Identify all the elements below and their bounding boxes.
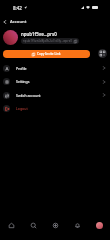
button[interactable]: Copy Invite Link	[3, 50, 90, 58]
staticText: Copy Invite Link	[37, 52, 61, 56]
staticText: Profile	[16, 66, 27, 71]
staticText: npub1f5ve4d8ja9k2u7ct0ly...wprs0	[23, 39, 72, 43]
button[interactable]: Switch account	[0, 88, 110, 102]
button[interactable]: New post	[45, 215, 65, 235]
staticText: Settings	[16, 79, 30, 84]
button[interactable]: Notifications	[67, 215, 87, 235]
button[interactable]: Settings	[0, 75, 110, 88]
button[interactable]: Show QR code	[98, 49, 107, 58]
staticText: Account	[10, 19, 27, 25]
button[interactable]: Logout	[0, 102, 110, 115]
staticText: Logout	[16, 106, 28, 111]
staticText: npub1f5ve...prs0	[21, 31, 57, 37]
staticText: Switch account	[16, 93, 41, 98]
button[interactable]: Back	[0, 17, 9, 26]
button[interactable]: Search	[23, 215, 43, 235]
staticText: 8:42	[13, 5, 22, 11]
button[interactable]: npub1f5ve4d8ja9k2u7ct0ly...wprs0	[21, 38, 79, 44]
button[interactable]: Profile	[0, 61, 110, 75]
button[interactable]: Account	[89, 215, 109, 235]
button[interactable]: Home	[1, 215, 21, 235]
